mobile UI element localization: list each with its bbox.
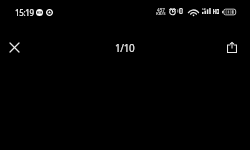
staticText: 457 [157, 7, 165, 13]
button[interactable]: Share [218, 33, 246, 61]
staticText: 15:19 [15, 7, 34, 18]
staticText: 1/10 [115, 41, 135, 55]
staticText: KB/S [156, 11, 166, 17]
button[interactable]: Close [0, 33, 28, 61]
